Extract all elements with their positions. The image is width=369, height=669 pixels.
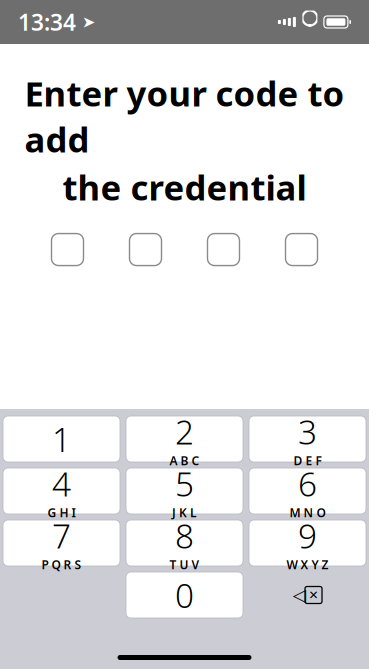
button[interactable]: 3 [249, 416, 366, 462]
staticText: 5 [175, 461, 194, 506]
staticText: ✕ [308, 588, 318, 602]
staticText: D E F [293, 453, 321, 469]
staticText: J K L [172, 505, 197, 521]
staticText: 1 [52, 417, 71, 461]
button[interactable]: 0 [126, 572, 243, 618]
button[interactable]: 2 [126, 416, 243, 462]
staticText: G H I [47, 505, 75, 521]
button[interactable]: 4 [3, 468, 120, 514]
staticText: 2 [175, 409, 194, 454]
staticText: ➤ [76, 13, 95, 31]
staticText: ◁ [293, 585, 306, 605]
staticText: 13:34 [18, 7, 76, 37]
staticText: 7 [52, 513, 71, 558]
button[interactable]: 7 [3, 520, 120, 566]
button[interactable]: 9 [249, 520, 366, 566]
button[interactable]: 1 [3, 416, 120, 462]
staticText: A B C [169, 453, 199, 469]
staticText: 4 [52, 461, 71, 506]
button[interactable]: 8 [126, 520, 243, 566]
button[interactable]: 5 [126, 468, 243, 514]
staticText: 9 [298, 513, 317, 558]
staticText: the credential [62, 164, 306, 210]
staticText: M N O [289, 505, 325, 521]
staticText: Enter your code to add [24, 70, 344, 162]
staticText: P Q R S [41, 557, 81, 573]
staticText: 8 [175, 513, 194, 558]
staticText: T U V [169, 557, 199, 573]
staticText: W X Y Z [286, 557, 328, 573]
staticText: 3 [298, 409, 317, 454]
staticText: 6 [298, 461, 317, 506]
button[interactable]: Delete [249, 572, 366, 618]
button[interactable]: 6 [249, 468, 366, 514]
staticText: 0 [175, 573, 194, 617]
